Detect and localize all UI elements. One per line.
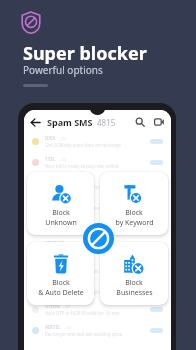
staticText: Zomato Cricket Cup begins! Win upto 10K: [45, 289, 133, 295]
button[interactable]: Back: [30, 117, 41, 128]
button[interactable]: Block: [27, 242, 94, 305]
staticText: - 2d: [59, 136, 67, 141]
staticText: - 2d: [67, 241, 75, 246]
staticText: - 2d: [63, 304, 71, 309]
staticText: Unknown: [45, 218, 77, 228]
staticText: Get 2GB/day extra data on recharge: [45, 142, 121, 148]
staticText: VENDOR: [45, 240, 64, 246]
staticText: Super blocker: [23, 41, 147, 66]
staticText: Get 2000 off on your next booking: [45, 268, 118, 274]
staticText: ZOMATO: [45, 282, 65, 288]
staticText: Businesses: [116, 288, 153, 298]
staticText: JIO: [45, 219, 52, 225]
button[interactable]: Block: [83, 223, 114, 254]
staticText: OTHER: [45, 303, 60, 309]
staticText: Block: [125, 278, 143, 288]
staticText: Your bill is ready to pay now online: [45, 163, 119, 169]
staticText: - 2d: [64, 199, 72, 204]
staticText: AIRTEL: [45, 324, 61, 330]
staticText: - 2d: [55, 220, 63, 225]
staticText: Get 2000 off on your next booking: [45, 247, 118, 253]
staticText: Flat 50% cashback on first order: [45, 184, 113, 190]
staticText: Block: [125, 208, 143, 218]
staticText: - 2d: [59, 157, 67, 162]
staticText: - 2d: [68, 283, 76, 288]
staticText: Block: [52, 208, 70, 218]
staticText: Recharge now and win exciting prize: [45, 205, 123, 211]
staticText: by Keyword: [115, 218, 154, 228]
button[interactable]: Block: [100, 172, 168, 235]
staticText: AIRTEL: [45, 198, 61, 204]
staticText: IDEA: [45, 135, 56, 141]
staticText: Block: [52, 278, 70, 288]
staticText: Unlimited calls plus 2GB data plan: [45, 226, 118, 232]
staticText: - 2d: [64, 325, 72, 330]
staticText: VM-HDFCBK: [45, 261, 72, 267]
staticText: Recharge now and win exciting prize: [45, 331, 123, 337]
staticText: Spam SMS: [47, 116, 93, 128]
staticText: & Auto Delete: [38, 288, 84, 298]
staticText: 4815: [97, 117, 116, 128]
staticText: Powerful options: [23, 63, 103, 77]
button[interactable]: Messages: [154, 117, 164, 127]
staticText: TTSL: [45, 156, 56, 162]
button[interactable]: Block: [27, 172, 94, 235]
staticText: Your OTP is 482910 valid for 10 min: [45, 310, 120, 316]
button[interactable]: Block: [100, 242, 168, 305]
button[interactable]: Search: [135, 117, 145, 127]
